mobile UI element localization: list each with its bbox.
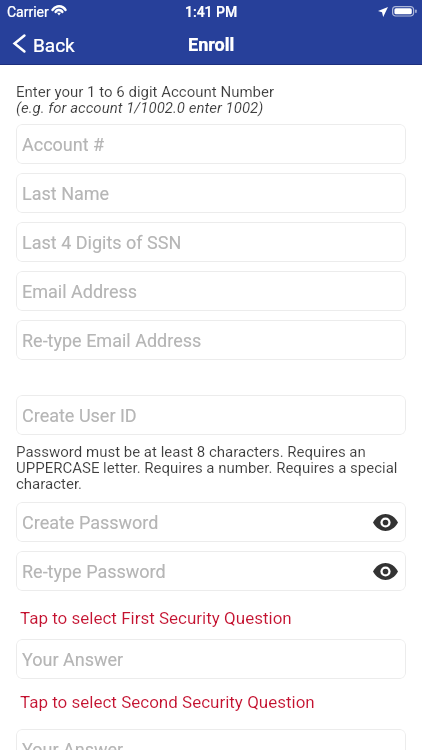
button[interactable]: Last 4 Digits of SSN	[16, 222, 406, 262]
staticText: Re-type Password	[22, 563, 166, 582]
staticText: Your Answer	[22, 741, 124, 750]
staticText: Last 4 Digits of SSN	[22, 234, 182, 253]
staticText: Password must be at least 8 characters. …	[16, 444, 406, 492]
staticText: Carrier	[7, 4, 49, 20]
button[interactable]: Tap to select Second Security Question	[16, 694, 315, 712]
button[interactable]: Your Answer	[16, 639, 406, 679]
button[interactable]: Create Password	[16, 502, 406, 542]
button[interactable]: Show password	[370, 507, 400, 537]
staticText: Enter your 1 to 6 digit Account Number	[16, 84, 275, 100]
staticText: Enroll	[188, 34, 235, 55]
staticText: Back	[33, 34, 75, 56]
button[interactable]: Last Name	[16, 173, 406, 213]
staticText: Your Answer	[22, 651, 124, 670]
staticText: Email Address	[22, 283, 138, 302]
button[interactable]: Tap to select First Security Question	[16, 610, 292, 628]
staticText: Account #	[22, 136, 105, 155]
staticText: Create User ID	[22, 407, 137, 426]
button[interactable]: Account #	[16, 124, 406, 164]
button[interactable]: Back	[0, 28, 85, 62]
staticText: 1:41 PM	[185, 4, 238, 20]
staticText: Re-type Email Address	[22, 332, 202, 351]
staticText: Create Password	[22, 514, 159, 533]
other: Back	[13, 34, 26, 53]
button[interactable]: Create User ID	[16, 395, 406, 435]
button[interactable]: Re-type Email Address	[16, 320, 406, 360]
button[interactable]: Email Address	[16, 271, 406, 311]
button[interactable]: Show password	[370, 556, 400, 586]
staticText: Last Name	[22, 185, 110, 204]
button[interactable]: Re-type Password	[16, 551, 406, 591]
staticText: (e.g. for account 1/1002.0 enter 1002)	[16, 100, 264, 116]
button[interactable]: Your Answer	[16, 729, 406, 750]
